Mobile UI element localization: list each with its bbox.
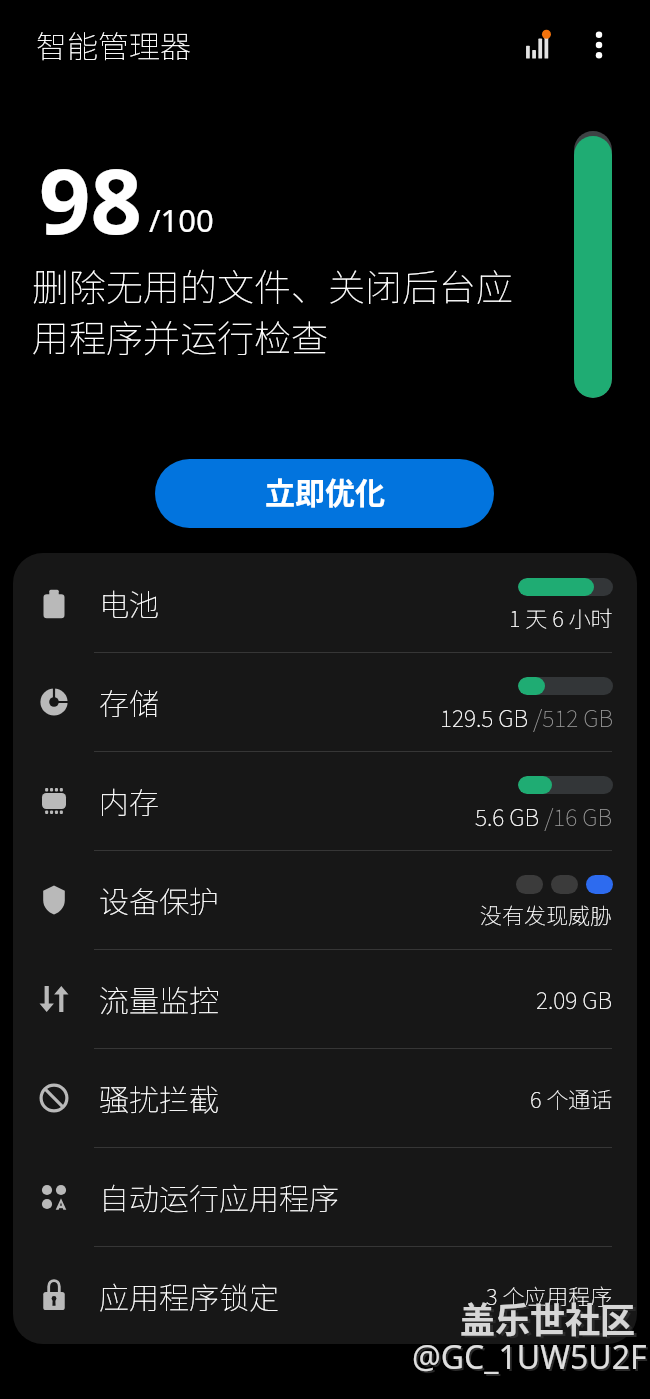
staticText: 6 个通话 [530, 1082, 613, 1114]
staticText: 2.09 GB [536, 982, 613, 1015]
staticText: 立即优化 [265, 469, 385, 512]
staticText: /100 [149, 199, 214, 241]
staticText: 3 个应用程序 [486, 1279, 613, 1311]
button[interactable]: 流量监控 [13, 949, 637, 1048]
button[interactable]: 骚扰拦截 [13, 1048, 637, 1147]
staticText: 5.6 GB /16 GB [475, 799, 613, 832]
staticText: @GC_1UW5U2F [414, 1337, 649, 1381]
staticText: 删除无用的文件、关闭后台应 用程序并运行检查 [32, 258, 513, 363]
staticText: 没有发现威胁 [480, 898, 613, 930]
button[interactable]: 存储 [13, 652, 637, 751]
staticText: 自动运行应用程序 [99, 1175, 339, 1218]
button[interactable]: 立即优化 [155, 459, 494, 528]
button[interactable]: Usage statistics [511, 19, 563, 71]
staticText: 内存 [99, 779, 159, 822]
staticText: 设备保护 [99, 878, 219, 921]
button[interactable]: 设备保护 [13, 850, 637, 949]
staticText: 智能管理器 [36, 22, 191, 67]
staticText: 应用程序锁定 [99, 1274, 279, 1317]
staticText: 存储 [99, 680, 159, 723]
button[interactable]: 内存 [13, 751, 637, 850]
staticText: 骚扰拦截 [99, 1076, 219, 1119]
staticText: 98 [39, 138, 142, 261]
staticText: @GC_1UW5U2F [412, 1335, 647, 1379]
staticText: 盖乐世社区 [460, 1292, 636, 1343]
staticText: 流量监控 [99, 977, 219, 1020]
button[interactable]: 自动运行应用程序 [13, 1147, 637, 1246]
staticText: 盖乐世社区 [463, 1294, 639, 1345]
button[interactable]: More options [573, 19, 625, 71]
staticText: 129.5 GB /512 GB [440, 700, 613, 733]
staticText: 1 天 6 小时 [509, 601, 613, 633]
button[interactable]: 应用程序锁定 [13, 1246, 637, 1344]
button[interactable]: 电池 [13, 553, 637, 652]
staticText: 电池 [99, 581, 159, 624]
